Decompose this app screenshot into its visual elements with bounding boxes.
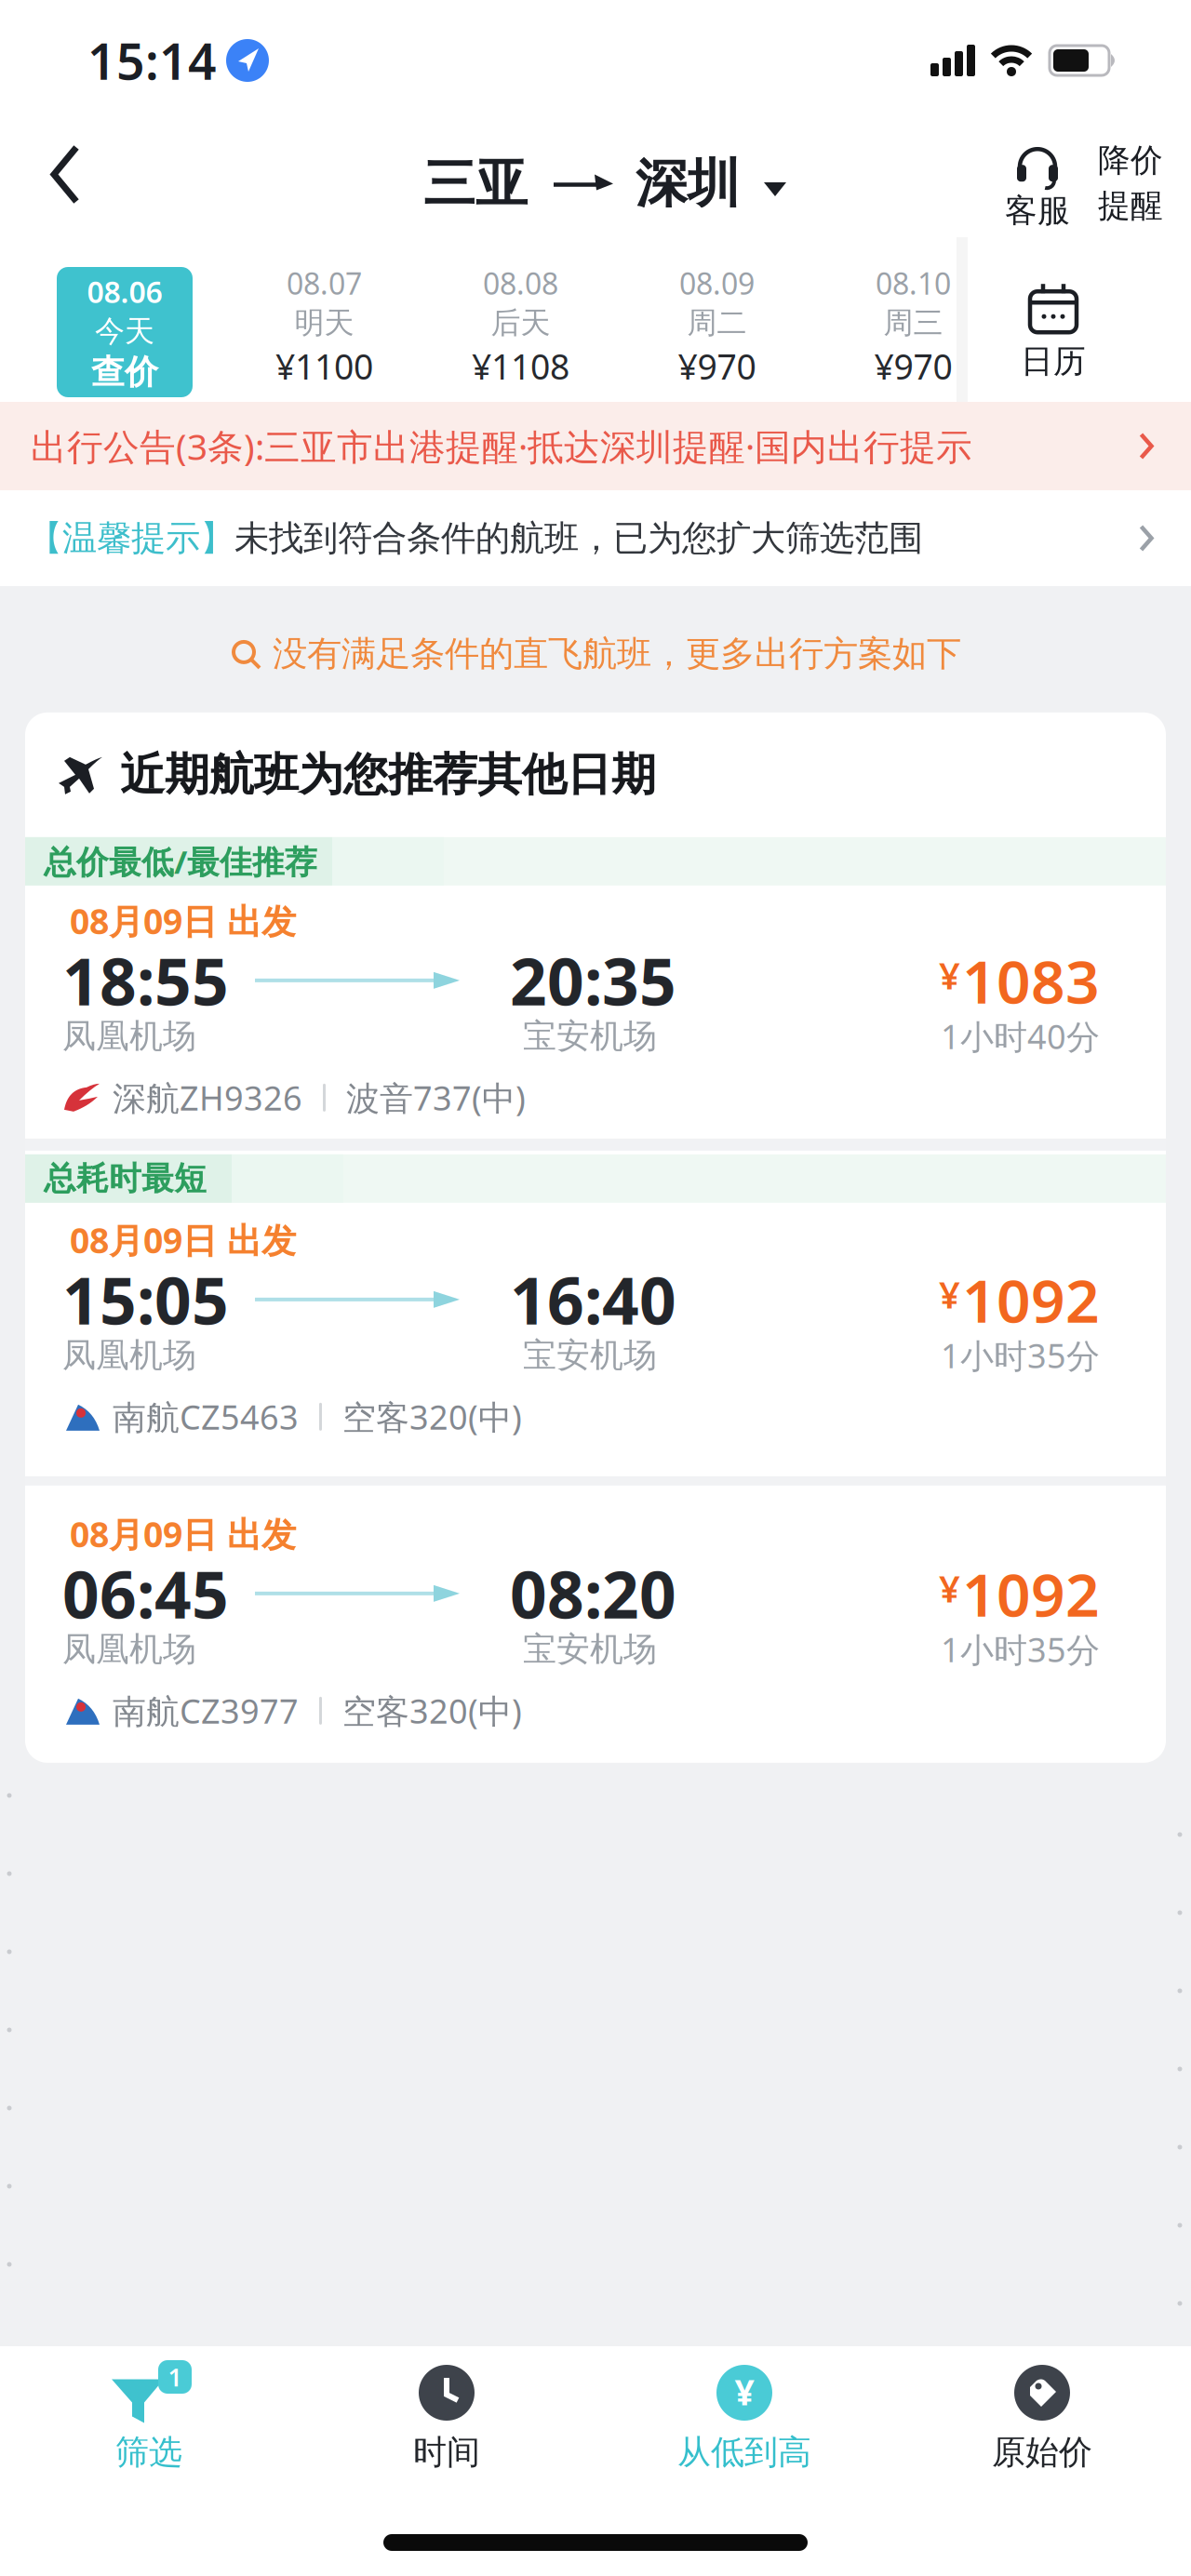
button[interactable]: 总价最低/最佳推荐	[25, 837, 1166, 1139]
staticText: 宝安机场	[523, 1335, 657, 1376]
button[interactable]: 08.07	[226, 263, 422, 389]
staticText: 客服	[1005, 191, 1070, 231]
staticText: 1小时35分	[941, 1333, 1100, 1378]
button[interactable]: 08月09日 出发	[25, 1486, 1166, 1763]
button[interactable]: 08.09	[619, 263, 815, 389]
button[interactable]: 三亚	[423, 152, 786, 216]
button[interactable]: Back	[0, 118, 84, 231]
staticText: 空客320(中)	[342, 1688, 522, 1733]
staticText: 出行公告(3条):三亚市出港提醒·抵达深圳提醒·国内出行提示	[31, 422, 972, 470]
staticText: 08.09	[679, 263, 755, 303]
button[interactable]: 出行公告(3条):三亚市出港提醒·抵达深圳提醒·国内出行提示	[0, 402, 1191, 490]
staticText: 后天	[491, 305, 550, 341]
staticText: 三亚	[423, 152, 528, 216]
staticText: 1092	[962, 1260, 1100, 1339]
button[interactable]: 客服	[1005, 141, 1070, 231]
staticText: 18:55	[62, 938, 229, 1023]
staticText: 15:14	[87, 28, 217, 93]
staticText: ¥970	[678, 343, 756, 389]
staticText: 从低到高	[677, 2432, 811, 2473]
staticText: 1小时40分	[941, 1014, 1100, 1058]
staticText: 15:05	[62, 1257, 229, 1342]
staticText: 降价	[1098, 141, 1163, 180]
button[interactable]: 08.10	[815, 263, 1011, 389]
button[interactable]: 1	[0, 2363, 298, 2473]
staticText: 今天	[95, 313, 154, 350]
staticText: ¥1108	[472, 343, 569, 389]
staticText: 没有满足条件的直飞航班，更多出行方案如下	[273, 633, 961, 675]
staticText: 凤凰机场	[62, 1629, 196, 1670]
staticText: 08月09日 出发	[70, 1217, 296, 1263]
staticText: 深航ZH9326	[113, 1075, 302, 1120]
staticText: 南航CZ3977	[113, 1688, 299, 1733]
staticText: ¥	[939, 950, 960, 1000]
staticText: 【温馨提示】	[28, 517, 234, 560]
button[interactable]: 08.06	[57, 237, 193, 397]
staticText: 06:45	[62, 1551, 229, 1636]
staticText: 总耗时最短	[44, 1159, 207, 1198]
staticText: 宝安机场	[523, 1016, 657, 1057]
staticText: 原始价	[992, 2432, 1092, 2473]
staticText: 凤凰机场	[62, 1335, 196, 1376]
staticText: 08.08	[483, 263, 558, 303]
staticText: 近期航班为您推荐其他日期	[120, 747, 656, 802]
button[interactable]: 原始价	[893, 2363, 1191, 2473]
staticText: 空客320(中)	[342, 1395, 522, 1439]
staticText: 周二	[687, 305, 747, 341]
staticText: 未找到符合条件的航班，已为您扩大筛选范围	[234, 517, 923, 560]
staticText: 筛选	[115, 2432, 182, 2473]
staticText: 08:20	[510, 1551, 676, 1636]
staticText: 明天	[294, 305, 354, 341]
staticText: ¥	[735, 2369, 754, 2415]
staticText: 周三	[883, 305, 943, 341]
staticText: 08月09日 出发	[70, 898, 296, 944]
staticText: 宝安机场	[523, 1629, 657, 1670]
button[interactable]: 总耗时最短	[25, 1151, 1166, 1476]
staticText: 1小时35分	[941, 1627, 1100, 1672]
button[interactable]: ¥	[595, 2363, 893, 2473]
staticText: 08月09日 出发	[70, 1511, 296, 1557]
staticText: 1083	[962, 941, 1100, 1020]
button[interactable]: 08.08	[422, 263, 619, 389]
staticText: ¥1100	[275, 343, 373, 389]
staticText: 08.06	[87, 272, 162, 311]
staticText: 查价	[91, 351, 158, 393]
staticText: 08.10	[876, 263, 951, 303]
button[interactable]: 【温馨提示】	[0, 490, 1191, 586]
staticText: ¥	[939, 1563, 960, 1613]
staticText: ¥	[939, 1269, 960, 1319]
staticText: 凤凰机场	[62, 1016, 196, 1057]
staticText: 1	[168, 2360, 182, 2393]
staticText: 提醒	[1098, 186, 1163, 226]
staticText: 1092	[962, 1554, 1100, 1633]
staticText: 深圳	[636, 152, 740, 216]
button[interactable]: 日历	[968, 237, 1191, 402]
staticText: 20:35	[510, 938, 676, 1023]
staticText: 时间	[413, 2432, 480, 2473]
staticText: 16:40	[510, 1257, 676, 1342]
staticText: ¥970	[874, 343, 952, 389]
staticText: 日历	[1021, 342, 1086, 381]
button[interactable]: 降价提醒	[1070, 141, 1163, 226]
staticText: 波音737(中)	[346, 1075, 526, 1120]
staticText: 总价最低/最佳推荐	[44, 840, 317, 883]
staticText: 08.07	[287, 263, 362, 303]
staticText: 南航CZ5463	[113, 1395, 299, 1439]
button[interactable]: 时间	[298, 2363, 595, 2473]
